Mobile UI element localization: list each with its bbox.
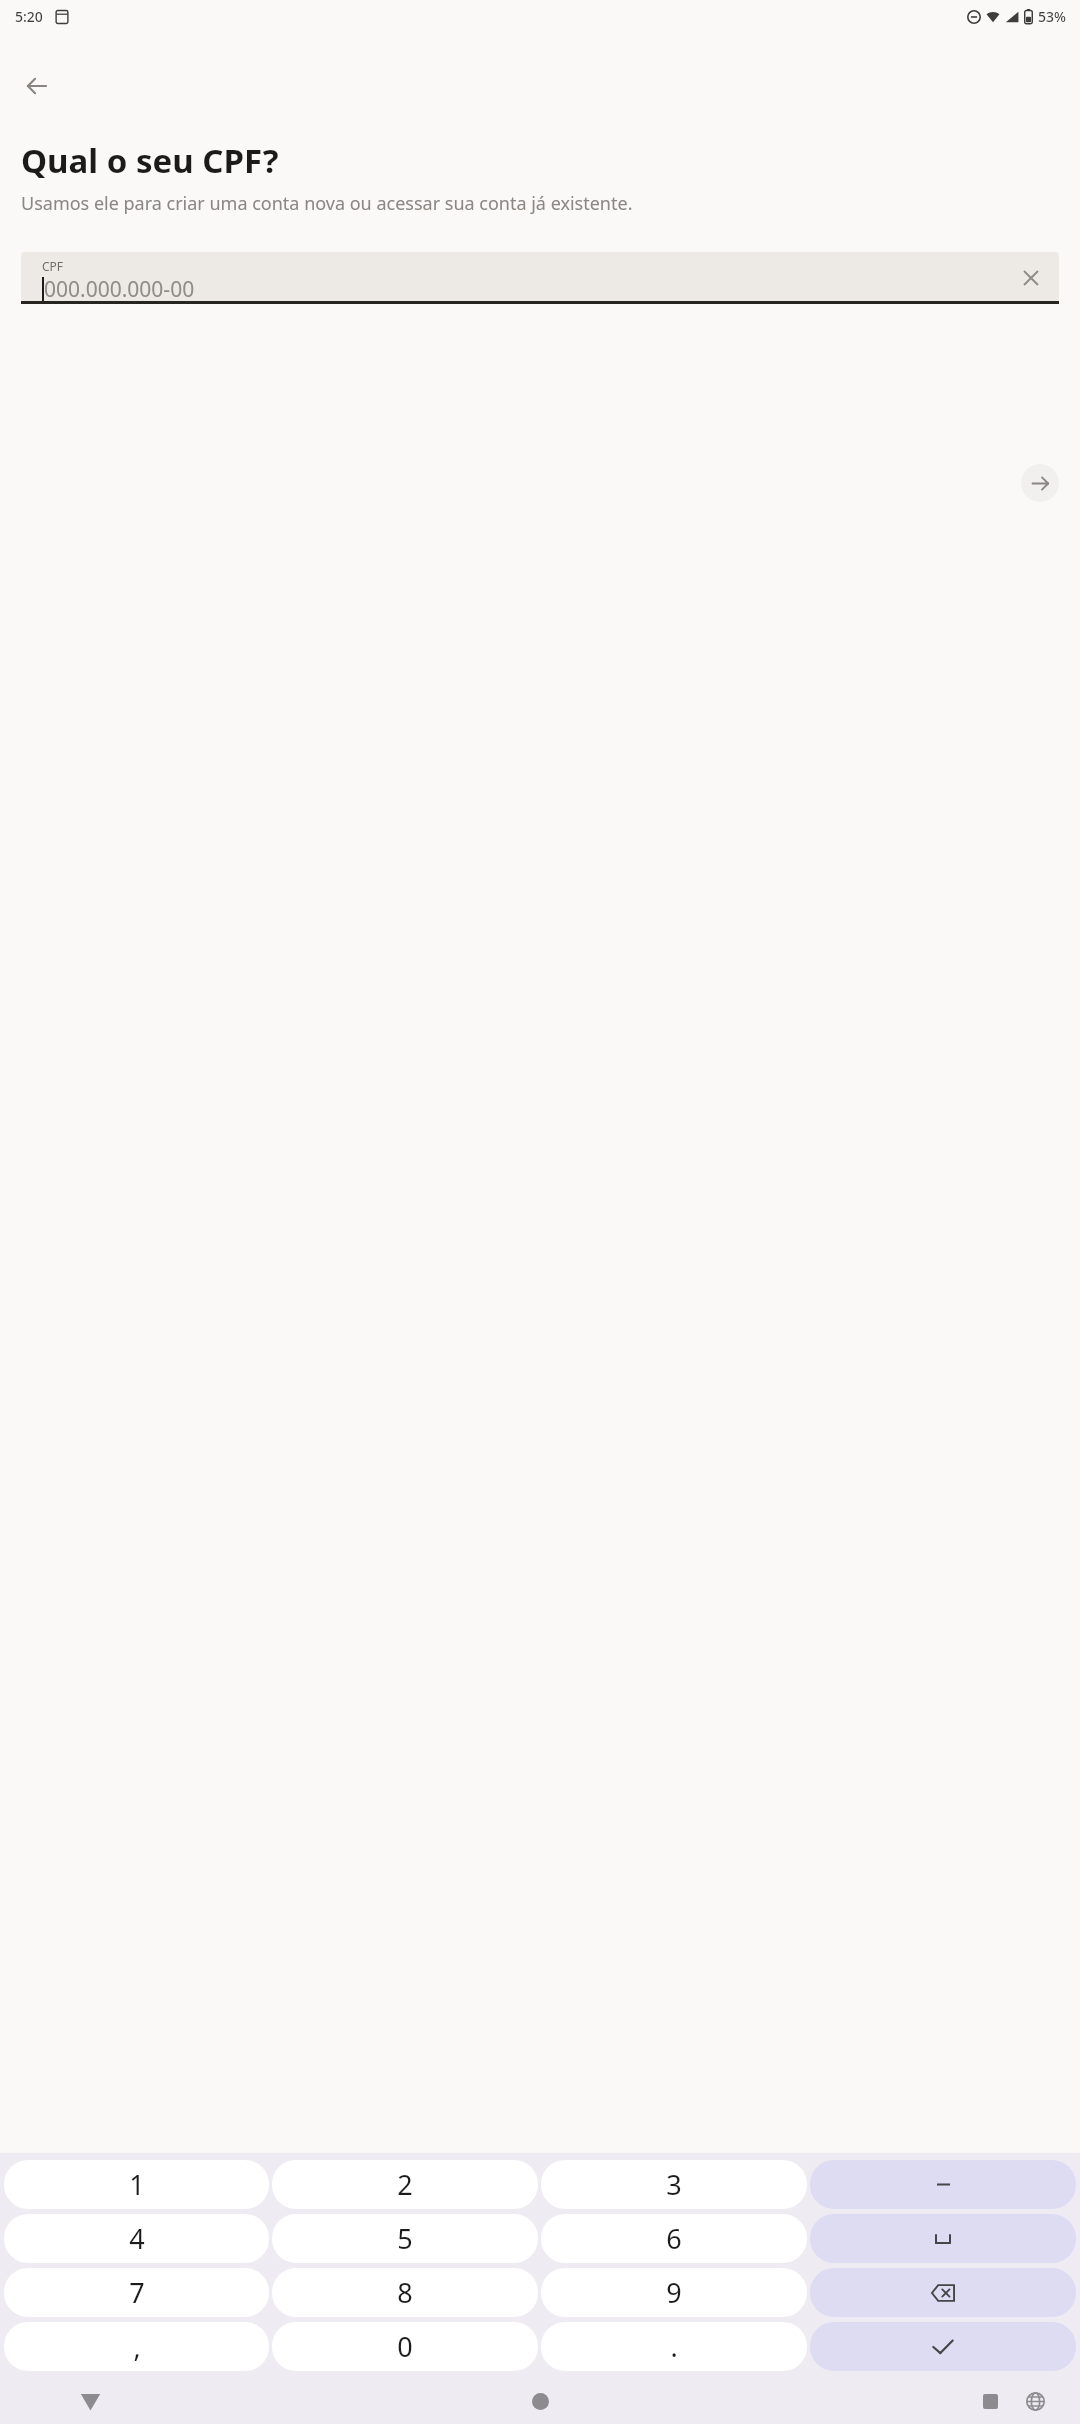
staticText: 4 (129, 2220, 145, 2257)
button[interactable]: 2 (272, 2160, 538, 2209)
button[interactable]: 4 (4, 2214, 269, 2263)
staticText: Usamos ele para criar uma conta nova ou … (21, 191, 633, 216)
staticText: 8 (397, 2274, 413, 2311)
staticText: 5:20 (15, 7, 43, 26)
staticText: 1 (129, 2166, 145, 2203)
button[interactable]: Limpar (1013, 260, 1049, 296)
staticText: 0 (397, 2328, 413, 2365)
button[interactable]: Voltar (13, 62, 61, 110)
staticText: 9 (666, 2274, 682, 2311)
button[interactable]: 0 (272, 2322, 538, 2371)
button[interactable]: 3 (541, 2160, 807, 2209)
staticText: CPF (42, 258, 64, 274)
staticText: 5 (397, 2220, 413, 2257)
button[interactable]: Espaço (810, 2214, 1076, 2263)
button[interactable]: 9 (541, 2268, 807, 2317)
button[interactable]: . (541, 2322, 807, 2371)
staticText: . (670, 2328, 678, 2365)
button[interactable]: Recentes (966, 2379, 1014, 2424)
button[interactable]: Apagar (810, 2268, 1076, 2317)
button[interactable]: Início (516, 2379, 564, 2424)
staticText: 000.000.000-00 (44, 275, 195, 304)
staticText: 53% (1038, 7, 1066, 26)
button[interactable]: Idioma (1011, 2379, 1059, 2424)
button[interactable]: , (4, 2322, 269, 2371)
button[interactable]: 8 (272, 2268, 538, 2317)
button[interactable]: Continuar (1021, 464, 1059, 502)
staticText: Qual o seu CPF? (21, 138, 279, 183)
staticText: , (133, 2328, 141, 2365)
button[interactable]: Traço (810, 2160, 1076, 2209)
button[interactable]: 5 (272, 2214, 538, 2263)
button[interactable]: Voltar (66, 2379, 114, 2424)
staticText: 2 (397, 2166, 413, 2203)
button[interactable]: CPF (21, 252, 1059, 304)
staticText: 7 (129, 2274, 145, 2311)
button[interactable]: 1 (4, 2160, 269, 2209)
staticText: 6 (666, 2220, 682, 2257)
button[interactable]: Confirmar (810, 2322, 1076, 2371)
button[interactable]: 7 (4, 2268, 269, 2317)
button[interactable]: 6 (541, 2214, 807, 2263)
staticText: 3 (666, 2166, 682, 2203)
